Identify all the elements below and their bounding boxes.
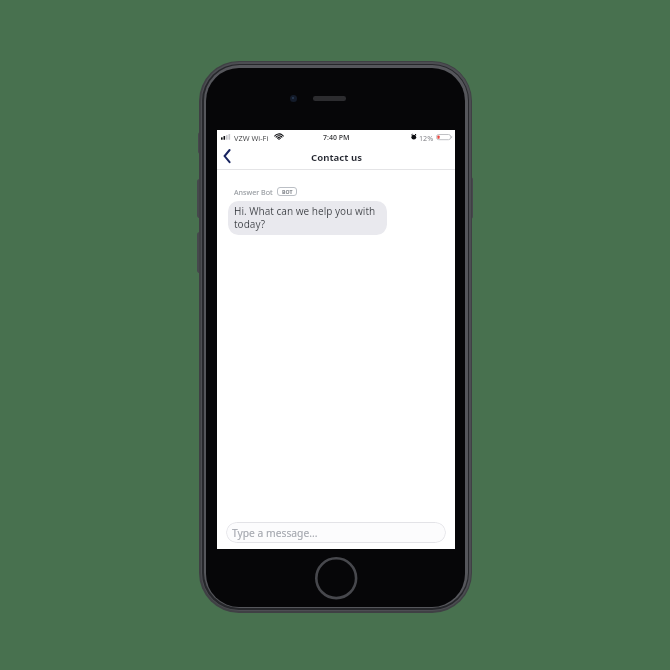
staticText: Answer Bot [234,187,273,197]
button[interactable]: Type a message... [226,522,446,543]
staticText: Type a message... [232,526,318,540]
button[interactable] [219,146,235,166]
staticText: Hi. What can we help you with today? [234,204,376,231]
staticText: BOT [282,188,293,195]
staticText: 12% [419,133,434,143]
staticText: VZW Wi-Fi [234,133,269,143]
staticText: 7:40 PM [323,133,350,143]
staticText: Contact us [311,151,362,164]
